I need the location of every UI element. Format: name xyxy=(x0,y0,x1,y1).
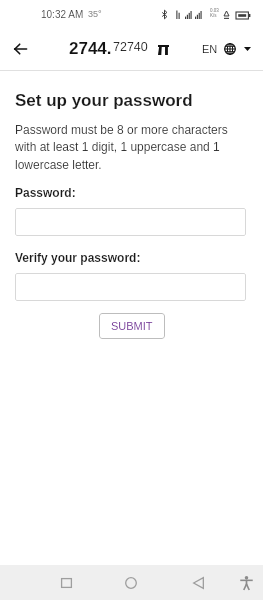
button[interactable] xyxy=(15,208,246,236)
staticText: 10:32 AM xyxy=(41,9,84,20)
staticText: 72740 xyxy=(113,40,148,54)
staticText: 0.03 xyxy=(210,8,219,13)
staticText: 2744. xyxy=(69,39,112,58)
staticText: 35° xyxy=(88,9,102,19)
staticText: Password: xyxy=(15,186,76,199)
staticText: Password must be 8 or more characters wi… xyxy=(15,123,247,172)
button[interactable]: Back xyxy=(2,30,39,67)
staticText: SUBMIT xyxy=(111,320,153,332)
staticText: Set up your password xyxy=(15,91,193,110)
staticText: EN xyxy=(202,43,218,55)
button[interactable] xyxy=(15,273,246,301)
staticText: K/s xyxy=(210,13,217,18)
button[interactable]: EN xyxy=(200,37,253,61)
staticText: Verify your password: xyxy=(15,251,141,264)
button[interactable]: Home xyxy=(114,566,148,600)
button[interactable]: Recent apps xyxy=(49,566,83,600)
button[interactable]: Accessibility xyxy=(229,566,263,600)
button[interactable]: SUBMIT xyxy=(99,313,165,339)
button[interactable]: Back xyxy=(181,566,215,600)
